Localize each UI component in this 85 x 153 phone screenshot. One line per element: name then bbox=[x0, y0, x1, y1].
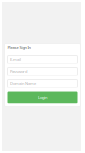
staticText: Password bbox=[10, 69, 27, 74]
button[interactable]: E-mail bbox=[7, 55, 77, 63]
button[interactable]: Domain Name bbox=[7, 79, 77, 87]
staticText: Domain Name bbox=[10, 81, 36, 86]
staticText: Please Sign In bbox=[7, 45, 30, 50]
button[interactable]: Password bbox=[7, 67, 77, 75]
button[interactable]: Login bbox=[7, 91, 77, 103]
staticText: Login bbox=[38, 95, 47, 100]
staticText: E-mail bbox=[10, 57, 21, 62]
